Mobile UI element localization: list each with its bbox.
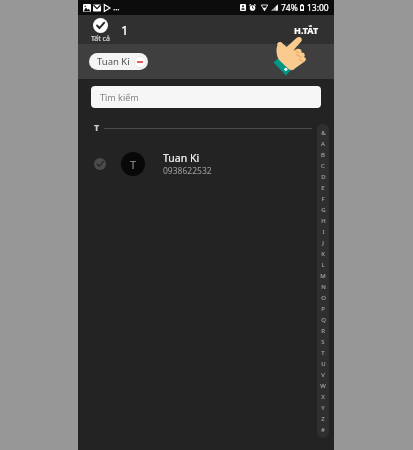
staticText: D xyxy=(321,173,326,181)
staticText: Y xyxy=(321,404,325,412)
button[interactable]: Select contact xyxy=(94,158,106,170)
staticText: Tìm kiếm xyxy=(100,91,139,103)
staticText: M xyxy=(320,272,326,280)
staticText: K xyxy=(321,250,325,258)
staticText: F xyxy=(321,195,325,203)
staticText: Tuan Ki xyxy=(163,151,200,165)
staticText: 0938622532 xyxy=(163,165,212,177)
button[interactable]: Alphabet index xyxy=(317,124,329,438)
staticText: S xyxy=(321,338,325,346)
staticText: Tất cả xyxy=(91,34,110,44)
staticText: C xyxy=(321,162,325,170)
staticText: G xyxy=(321,206,326,214)
staticText: Tuan Ki xyxy=(97,55,130,68)
staticText: 74% xyxy=(281,2,298,14)
staticText: & xyxy=(321,129,326,137)
staticText: A xyxy=(321,140,325,148)
staticText: I xyxy=(322,228,325,236)
staticText: L xyxy=(321,261,325,269)
button[interactable]: Tuan Ki xyxy=(89,53,148,70)
button[interactable]: Tất cả xyxy=(91,18,110,44)
staticText: R xyxy=(321,327,325,335)
staticText: 13:00 xyxy=(307,2,329,14)
staticText: H xyxy=(321,217,326,225)
staticText: T xyxy=(321,349,325,357)
staticText: Q xyxy=(321,316,326,324)
staticText: U xyxy=(321,360,326,368)
button[interactable]: Select contact xyxy=(78,146,334,182)
staticText: 1 xyxy=(121,21,129,39)
staticText: H.TẮT xyxy=(294,24,319,36)
staticText: J xyxy=(322,239,324,247)
other: Remove Tuan Ki xyxy=(134,56,146,68)
staticText: N xyxy=(321,283,326,291)
staticText: V xyxy=(321,371,325,379)
staticText: E xyxy=(321,184,325,192)
staticText: T xyxy=(130,157,137,172)
staticText: # xyxy=(321,426,325,434)
staticText: O xyxy=(321,294,326,302)
staticText: W xyxy=(320,382,326,390)
staticText: X xyxy=(321,393,325,401)
staticText: B xyxy=(321,151,325,159)
staticText: P xyxy=(321,305,325,313)
other: Tap pointer xyxy=(274,34,308,78)
staticText: T xyxy=(94,121,100,131)
button[interactable]: H.TẮT xyxy=(285,15,334,44)
staticText: Z xyxy=(321,415,325,423)
button[interactable]: Tìm kiếm xyxy=(91,86,321,108)
